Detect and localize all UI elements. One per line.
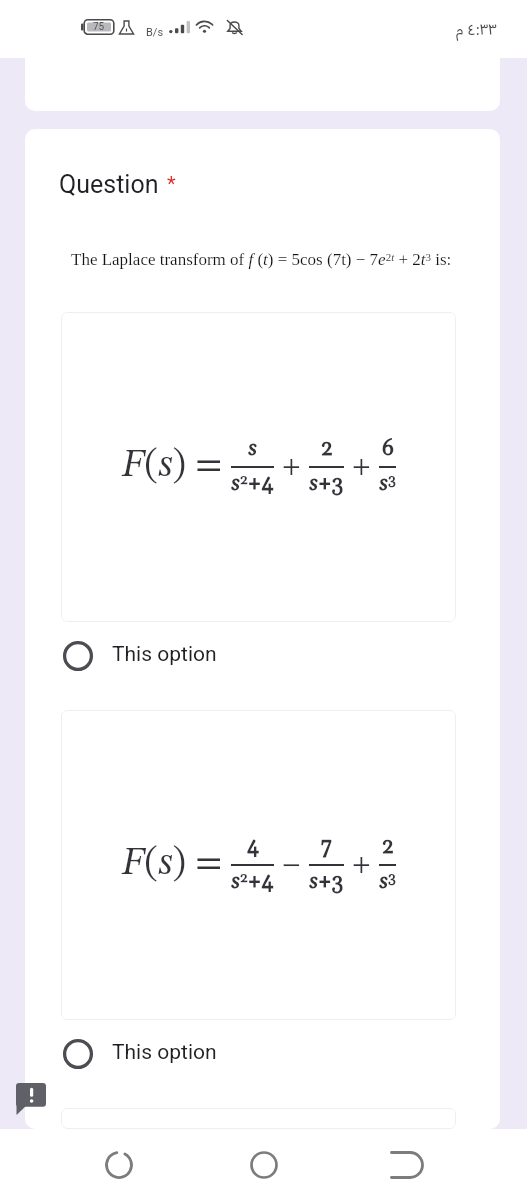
staticText: 𝐹(𝑠) = bbox=[122, 447, 223, 485]
button[interactable]: This option bbox=[25, 1020, 500, 1108]
staticText: 6 bbox=[382, 436, 394, 463]
staticText: − bbox=[282, 852, 301, 878]
staticText: 7 bbox=[321, 834, 332, 861]
staticText: * bbox=[167, 172, 176, 195]
button[interactable]: Back bbox=[387, 1144, 429, 1186]
button[interactable]: Home bbox=[243, 1144, 285, 1186]
staticText: ٤:٣٣ م bbox=[456, 14, 497, 46]
staticText: s+3 bbox=[309, 471, 344, 498]
staticText: This option bbox=[112, 642, 217, 667]
staticText: This option bbox=[112, 1040, 217, 1065]
staticText: s+3 bbox=[309, 869, 344, 896]
staticText: 2 bbox=[382, 834, 394, 861]
staticText: + bbox=[282, 454, 301, 480]
staticText: Question bbox=[59, 170, 159, 199]
staticText: 75 bbox=[93, 21, 105, 33]
staticText: B/s bbox=[146, 26, 164, 39]
staticText: 𝐹(𝑠) = bbox=[122, 845, 223, 883]
staticText: s3 bbox=[379, 471, 396, 498]
staticText: + bbox=[352, 454, 371, 480]
staticText: The Laplace transform of f (t) = 5cos (7… bbox=[71, 250, 452, 269]
staticText: s3 bbox=[379, 869, 396, 896]
staticText: 2 bbox=[321, 436, 333, 463]
staticText: 4 bbox=[247, 834, 259, 861]
staticText: s2+4 bbox=[231, 869, 274, 896]
button[interactable]: Report a problem bbox=[16, 1083, 46, 1115]
button[interactable]: Recent apps bbox=[98, 1144, 140, 1186]
button[interactable]: This option bbox=[25, 622, 500, 710]
staticText: s2+4 bbox=[231, 471, 274, 498]
staticText: s bbox=[248, 436, 258, 463]
staticText: + bbox=[352, 852, 371, 878]
